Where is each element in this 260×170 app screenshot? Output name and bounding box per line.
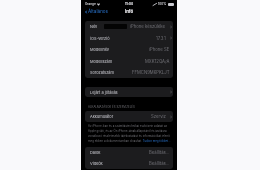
staticText: Az iPhone-ban és a számítástechnikai esz…: [88, 124, 173, 143]
staticText: 100%: [158, 2, 167, 6]
button[interactable]: Általános: [84, 9, 109, 15]
staticText: Beállítás...: [149, 150, 170, 155]
staticText: MXK12QA/A: [145, 59, 170, 64]
staticText: ALKALMAZÁSOK ÉS SZERVIZELÉS: [88, 105, 135, 108]
staticText: Orange: [85, 2, 96, 6]
staticText: Modellszám: [90, 59, 113, 64]
staticText: Beállítás...: [149, 161, 170, 166]
button[interactable]: Modellszám: [85, 55, 173, 67]
staticText: Videók: [90, 161, 103, 166]
staticText: Infó: [125, 9, 134, 14]
staticText: Szerviz: [151, 114, 166, 119]
button[interactable]: Lejárt a jótállás: [85, 87, 173, 97]
button[interactable]: Modellnév: [85, 44, 173, 55]
staticText: iOS-verzió: [90, 36, 110, 41]
staticText: iPhone készüléke: [130, 24, 166, 29]
button[interactable]: Videók: [85, 158, 173, 169]
staticText: Név: [90, 24, 98, 29]
button[interactable]: iOS-verzió: [85, 32, 173, 44]
staticText: iPhone SE: [149, 47, 170, 52]
staticText: 17.3.1: [156, 36, 166, 41]
staticText: Modellnév: [90, 47, 110, 52]
button[interactable]: Sorozatszám: [85, 67, 173, 78]
staticText: Sorozatszám: [90, 70, 114, 75]
staticText: Akkumulátor: [90, 114, 114, 119]
button[interactable]: Akkumulátor: [85, 111, 173, 122]
staticText: Általános: [88, 9, 109, 15]
button[interactable]: Név: [85, 21, 173, 32]
staticText: Lejárt a jótállás: [90, 90, 118, 95]
staticText: Dalok: [90, 150, 101, 155]
staticText: 11:04: [125, 2, 134, 6]
button[interactable]: Dalok: [85, 147, 173, 158]
staticText: FFMCN9M6PKLJT: [132, 70, 170, 75]
